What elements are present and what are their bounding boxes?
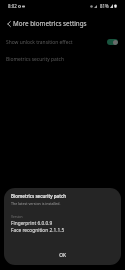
button[interactable]: Back (0, 12, 13, 34)
staticText: 8:02 (8, 3, 17, 9)
button[interactable]: OK (4, 245, 121, 265)
staticText: Face recognition 2.1.1.5 (11, 227, 65, 234)
button[interactable]: Show unlock transition effect (0, 34, 125, 51)
staticText: OK (59, 252, 66, 259)
staticText: Show unlock transition effect (6, 39, 73, 46)
button[interactable]: Biometrics security patch (0, 51, 125, 68)
staticText: More biometrics settings (13, 19, 87, 28)
staticText: The latest version is installed. (11, 201, 61, 206)
staticText: Biometrics security patch (6, 56, 64, 63)
staticText: 81% (100, 3, 109, 9)
staticText: Version (11, 214, 23, 218)
staticText: Fingerprint 6.0.0.9 (11, 220, 53, 227)
staticText: Biometrics security patch (11, 193, 67, 199)
